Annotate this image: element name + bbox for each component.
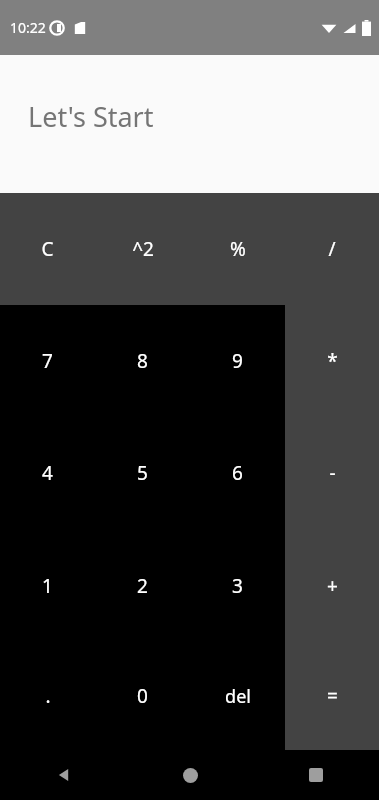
- staticText: =: [327, 683, 338, 709]
- staticText: .: [45, 683, 51, 709]
- button[interactable]: Recent apps: [253, 750, 379, 800]
- staticText: 4: [42, 460, 53, 486]
- staticText: 1: [42, 573, 53, 599]
- button[interactable]: *: [285, 305, 379, 417]
- button[interactable]: 8: [95, 305, 190, 417]
- staticText: Let's Start: [28, 98, 154, 135]
- button[interactable]: del: [190, 642, 285, 750]
- staticText: ^2: [132, 236, 154, 262]
- button[interactable]: Back: [0, 750, 127, 800]
- button[interactable]: .: [0, 642, 95, 750]
- button[interactable]: 5: [95, 417, 190, 529]
- staticText: +: [327, 573, 338, 599]
- staticText: /: [328, 236, 336, 262]
- button[interactable]: 4: [0, 417, 95, 529]
- button[interactable]: +: [285, 529, 379, 642]
- staticText: C: [41, 236, 54, 262]
- button[interactable]: /: [285, 193, 379, 305]
- button[interactable]: =: [285, 642, 379, 750]
- staticText: %: [230, 236, 246, 262]
- staticText: 0: [137, 683, 148, 709]
- button[interactable]: 1: [0, 529, 95, 642]
- button[interactable]: ^2: [95, 193, 190, 305]
- staticText: 3: [232, 573, 243, 599]
- staticText: 9: [232, 348, 243, 374]
- staticText: 6: [232, 460, 243, 486]
- button[interactable]: 2: [95, 529, 190, 642]
- button[interactable]: Home: [127, 750, 253, 800]
- button[interactable]: C: [0, 193, 95, 305]
- button[interactable]: 9: [190, 305, 285, 417]
- staticText: -: [329, 460, 336, 486]
- button[interactable]: 6: [190, 417, 285, 529]
- staticText: 10:22: [10, 18, 46, 37]
- staticText: 5: [137, 460, 148, 486]
- staticText: 8: [137, 348, 148, 374]
- button[interactable]: -: [285, 417, 379, 529]
- button[interactable]: 0: [95, 642, 190, 750]
- button[interactable]: %: [190, 193, 285, 305]
- staticText: 2: [137, 573, 148, 599]
- button[interactable]: 7: [0, 305, 95, 417]
- staticText: del: [225, 684, 251, 709]
- button[interactable]: 3: [190, 529, 285, 642]
- staticText: *: [327, 348, 338, 374]
- staticText: 7: [42, 348, 53, 374]
